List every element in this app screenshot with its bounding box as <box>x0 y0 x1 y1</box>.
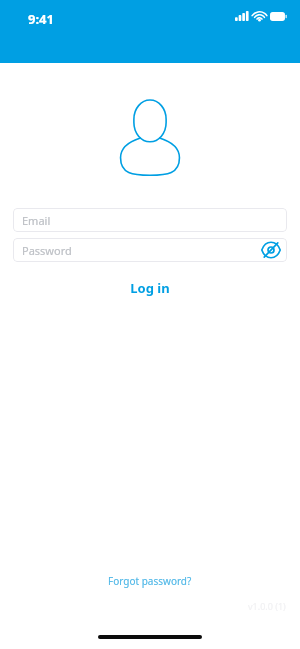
staticText: Password <box>22 243 72 258</box>
other: Show password <box>261 240 281 260</box>
staticText: 9:41 <box>28 10 54 28</box>
staticText: v1.0.0 (1) <box>248 600 286 612</box>
button[interactable]: Show password <box>261 240 281 260</box>
button[interactable]: Log in <box>116 276 184 300</box>
staticText: Forgot password? <box>108 574 192 588</box>
button[interactable]: Forgot password? <box>98 571 202 591</box>
staticText: Email <box>22 213 51 228</box>
staticText: Log in <box>130 279 170 297</box>
button[interactable]: Email <box>13 208 287 232</box>
button[interactable]: Password <box>13 238 287 262</box>
